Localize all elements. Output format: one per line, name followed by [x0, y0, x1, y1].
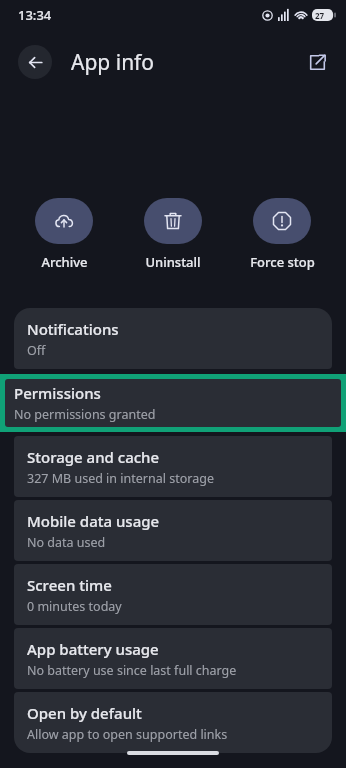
- staticText: Mobile data usage: [27, 511, 160, 531]
- staticText: Storage and cache: [27, 447, 160, 467]
- staticText: 327 MB used in internal storage: [27, 470, 214, 487]
- staticText: 13:34: [18, 6, 52, 24]
- button[interactable]: Archive: [16, 198, 112, 271]
- staticText: Permissions: [14, 383, 101, 403]
- button[interactable]: Mobile data usage: [14, 500, 332, 561]
- button[interactable]: App battery usage: [14, 628, 332, 689]
- button[interactable]: Open by default: [14, 692, 332, 753]
- staticText: App battery usage: [27, 639, 159, 659]
- staticText: Open by default: [27, 703, 142, 723]
- staticText: 0 minutes today: [27, 598, 122, 615]
- button[interactable]: Storage and cache: [14, 436, 332, 497]
- staticText: Archive: [41, 253, 88, 271]
- staticText: Force stop: [250, 253, 315, 271]
- button[interactable]: Force stop: [234, 198, 330, 271]
- button[interactable]: Permissions: [0, 374, 346, 432]
- button[interactable]: Screen time: [14, 564, 332, 625]
- staticText: Screen time: [27, 575, 112, 595]
- staticText: Notifications: [27, 319, 119, 339]
- staticText: No permissions granted: [14, 406, 156, 423]
- staticText: Off: [27, 342, 46, 359]
- staticText: 27: [315, 10, 325, 21]
- button[interactable]: Back: [18, 45, 52, 79]
- staticText: Allow app to open supported links: [27, 726, 228, 743]
- button[interactable]: Notifications: [14, 308, 332, 369]
- staticText: No battery use since last full charge: [27, 662, 237, 679]
- staticText: Uninstall: [145, 253, 201, 271]
- staticText: No data used: [27, 534, 106, 551]
- staticText: App info: [71, 48, 155, 77]
- button[interactable]: Uninstall: [125, 198, 221, 271]
- button[interactable]: Open in app store: [300, 45, 334, 79]
